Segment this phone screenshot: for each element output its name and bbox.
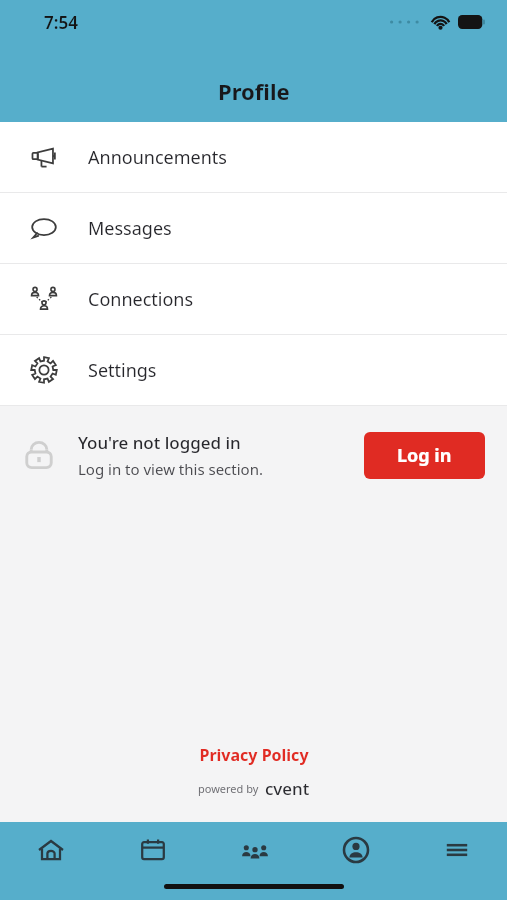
staticText: cvent (265, 777, 310, 800)
staticText: powered by (198, 781, 259, 796)
button[interactable]: Attendees (204, 822, 305, 878)
staticText: Profile (218, 76, 290, 106)
staticText: Settings (88, 358, 157, 383)
staticText: Announcements (88, 145, 227, 170)
button[interactable]: Announcements (0, 122, 507, 192)
button[interactable]: More (406, 822, 507, 878)
staticText: Log in to view this section. (78, 459, 263, 479)
staticText: Messages (88, 216, 172, 241)
button[interactable]: Home (0, 822, 102, 878)
button[interactable]: Connections (0, 264, 507, 334)
button[interactable]: Log in (364, 432, 485, 479)
button[interactable]: Schedule (102, 822, 204, 878)
button[interactable]: Settings (0, 335, 507, 405)
button[interactable]: You're not logged in (0, 406, 507, 504)
button[interactable]: Profile (305, 822, 406, 878)
button[interactable]: Messages (0, 193, 507, 263)
staticText: Connections (88, 287, 194, 312)
staticText: Log in (397, 443, 452, 468)
staticText: You're not logged in (78, 431, 241, 454)
staticText: 7:54 (44, 11, 78, 34)
button[interactable]: Privacy Policy (199, 744, 309, 766)
